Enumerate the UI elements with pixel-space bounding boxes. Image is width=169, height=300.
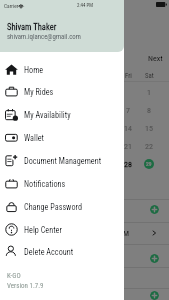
button[interactable]: Home xyxy=(0,58,124,81)
staticText: 1 xyxy=(147,88,151,97)
staticText: Fri xyxy=(125,72,132,80)
staticText: Document Management xyxy=(24,156,102,166)
staticText: 28 xyxy=(124,160,132,169)
staticText: My Rides xyxy=(24,87,54,97)
staticText: Delete Account xyxy=(24,247,74,257)
button[interactable]: Open xyxy=(150,229,158,237)
staticText: 29 xyxy=(146,161,152,167)
button[interactable]: Delete Account xyxy=(0,240,124,263)
staticText: Wallet xyxy=(24,133,45,143)
staticText: Help Center xyxy=(24,225,62,235)
button[interactable]: Add xyxy=(150,254,159,263)
staticText: Notifications xyxy=(24,179,66,189)
staticText: M xyxy=(123,229,130,238)
button[interactable]: Notifications xyxy=(0,172,124,195)
button[interactable]: Add xyxy=(150,205,159,214)
staticText: My Availability xyxy=(24,110,71,120)
staticText: 7 xyxy=(126,106,130,115)
button[interactable]: Add xyxy=(150,291,159,300)
button[interactable]: Help Center xyxy=(0,218,124,241)
staticText: 8 xyxy=(147,106,151,115)
staticText: 15 xyxy=(145,124,153,133)
staticText: Sat xyxy=(145,72,154,80)
button[interactable]: My Rides xyxy=(0,80,124,103)
button[interactable]: My Availability xyxy=(0,103,124,126)
staticText: Shivam Thaker xyxy=(7,22,57,32)
staticText: K-GO xyxy=(7,272,21,280)
button[interactable]: 29 xyxy=(144,159,154,169)
staticText: Change Password xyxy=(24,202,83,212)
staticText: 22 xyxy=(145,142,153,151)
staticText: 21 xyxy=(124,142,132,151)
staticText: shivam.iqlance@gmail.com xyxy=(7,33,81,41)
staticText: Next xyxy=(148,54,163,63)
staticText: 2:44 PM xyxy=(77,2,93,8)
staticText: Carrier xyxy=(4,3,19,9)
button[interactable]: Next xyxy=(143,52,167,64)
staticText: Version 1.7.9 xyxy=(7,282,44,290)
button[interactable]: Wallet xyxy=(0,126,124,149)
staticText: 14 xyxy=(124,124,132,133)
button[interactable]: Document Management xyxy=(0,149,124,172)
button[interactable]: Change Password xyxy=(0,195,124,218)
staticText: Home xyxy=(24,65,44,75)
